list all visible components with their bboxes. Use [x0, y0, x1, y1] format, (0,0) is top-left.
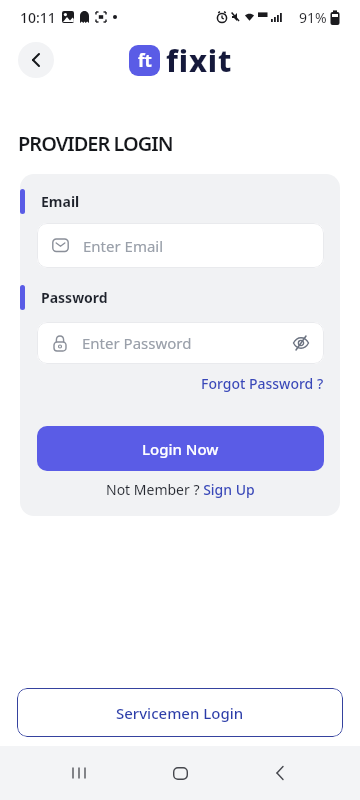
staticText: Enter Password — [82, 333, 192, 353]
staticText: ft — [138, 49, 152, 72]
staticText: Enter Email — [83, 236, 164, 256]
staticText: Login Now — [142, 439, 219, 459]
staticText: 91% — [299, 8, 327, 27]
button[interactable] — [258, 751, 302, 795]
staticText: Password — [41, 288, 108, 307]
staticText: Email — [41, 192, 80, 211]
button[interactable]: Not Member ? Sign Up — [20, 480, 340, 498]
button[interactable]: Servicemen Login — [17, 688, 343, 737]
staticText: Forgot Password ? — [201, 374, 324, 392]
button[interactable]: Enter Password — [37, 322, 324, 364]
button[interactable]: Enter Email — [37, 223, 324, 268]
button[interactable] — [57, 751, 101, 795]
button[interactable] — [18, 42, 54, 78]
staticText: fixit — [166, 40, 233, 81]
staticText: PROVIDER LOGIN — [18, 130, 173, 157]
button[interactable]: Login Now — [37, 426, 324, 471]
staticText: Not Member ? Sign Up — [106, 480, 255, 498]
staticText: 10:11 — [20, 8, 56, 27]
staticText: Servicemen Login — [116, 703, 244, 723]
button[interactable]: Forgot Password ? — [20, 374, 324, 392]
button[interactable] — [158, 751, 202, 795]
